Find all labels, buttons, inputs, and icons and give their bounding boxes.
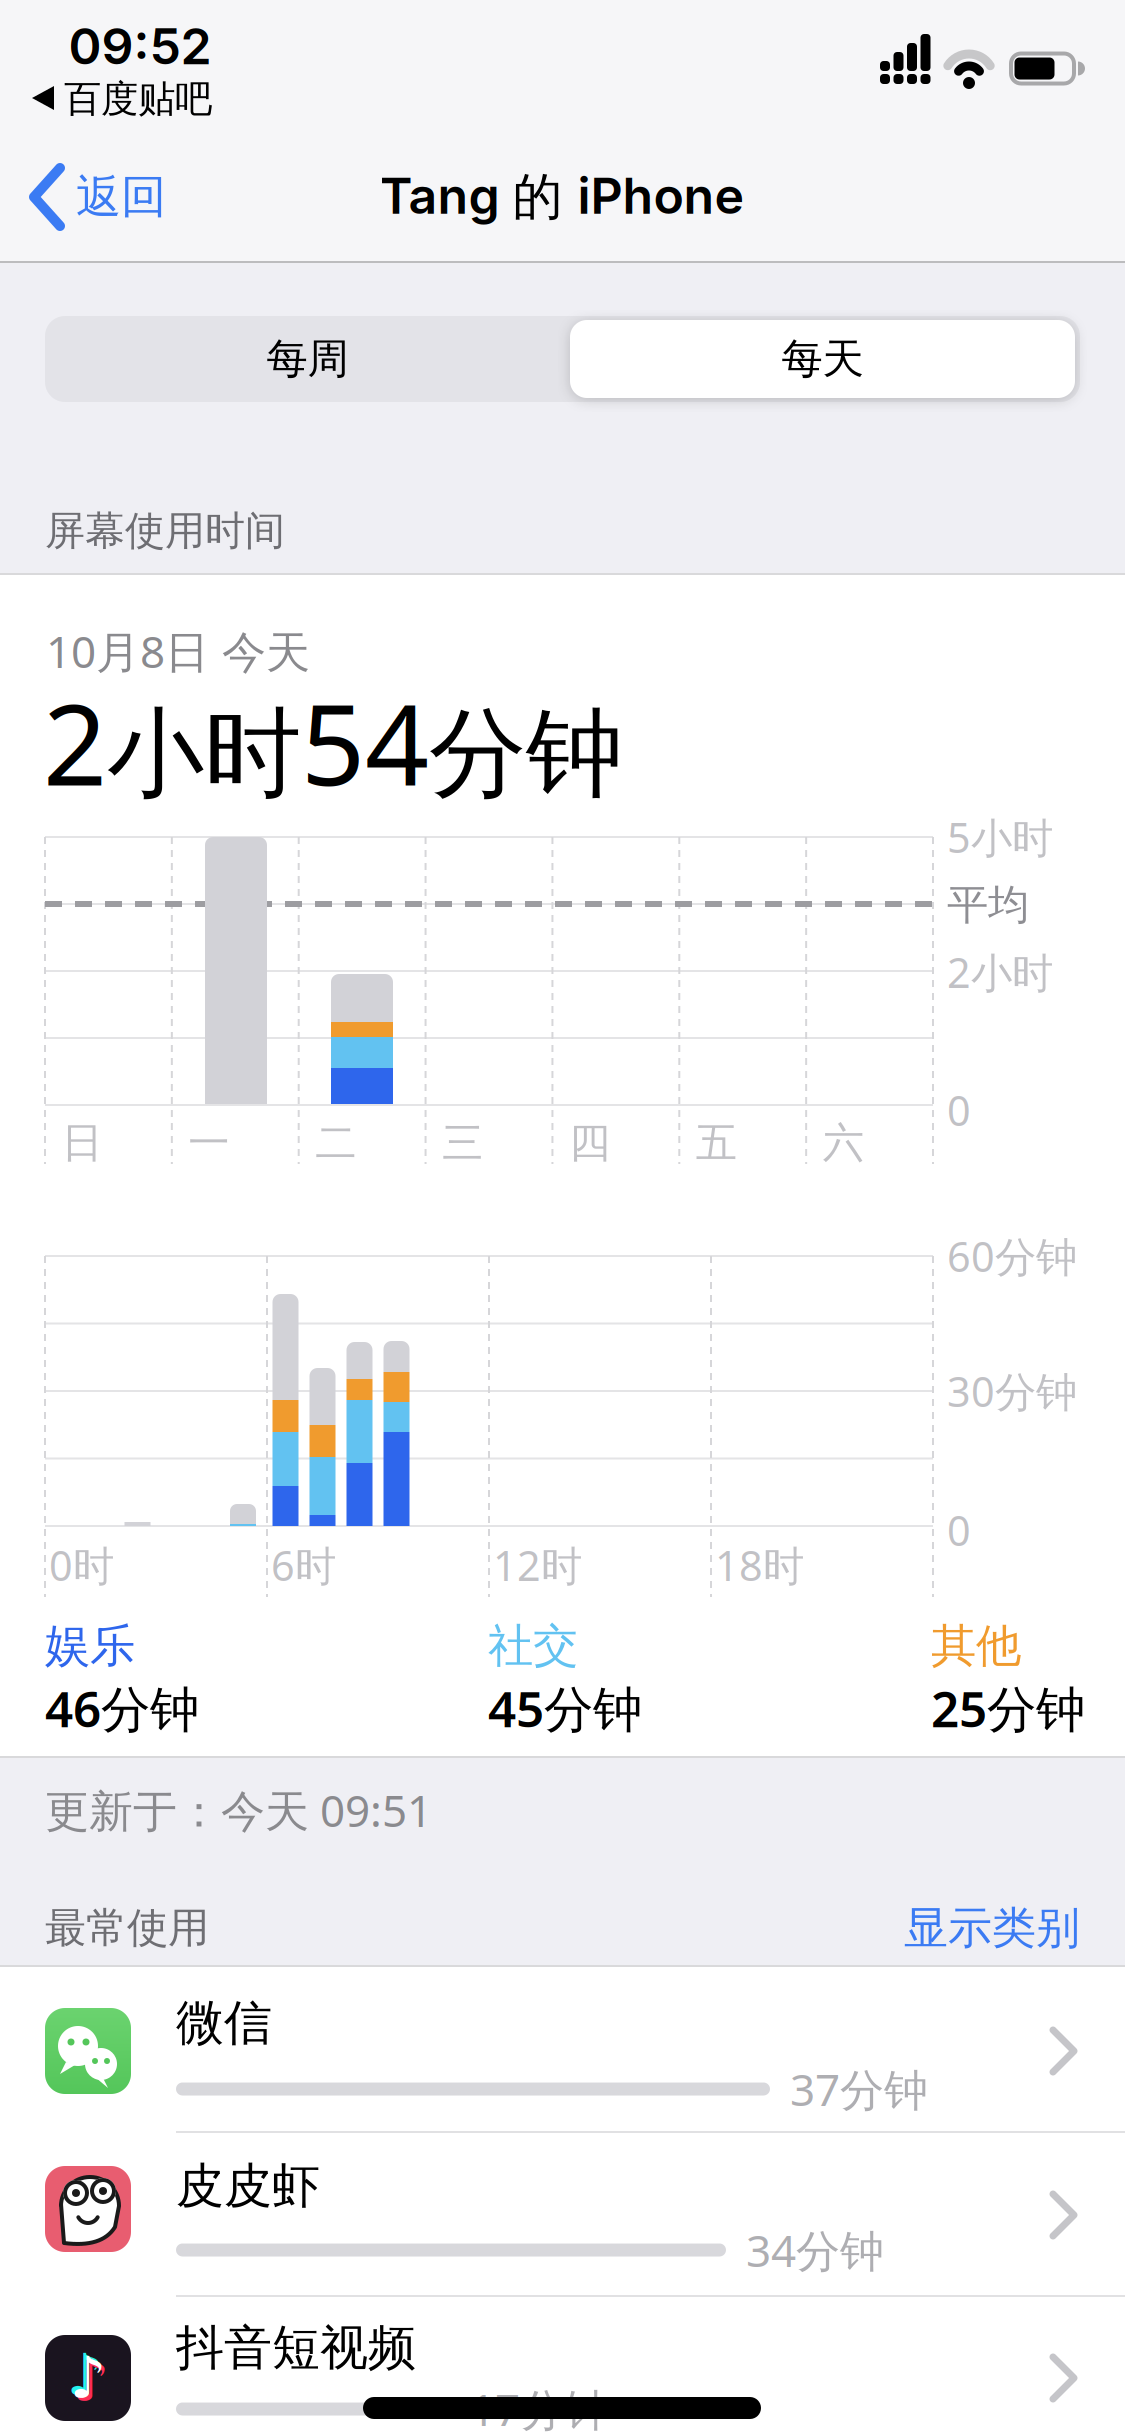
staticText: ♪ (72, 2348, 109, 2414)
staticText: 30分钟 (947, 1364, 1077, 1418)
staticText: 0 (947, 1083, 971, 1137)
staticText: 抖音短视频 (176, 2318, 416, 2377)
button[interactable]: ♪ (0, 2296, 1125, 2436)
staticText: 17分钟 (470, 2380, 608, 2436)
staticText: 45分钟 (488, 1675, 642, 1741)
staticText: 六 (823, 1118, 864, 1168)
staticText: 46分钟 (45, 1675, 199, 1741)
staticText: 0 (947, 1503, 971, 1557)
staticText: 五 (696, 1118, 737, 1168)
staticText: 平均 (947, 880, 1029, 930)
button[interactable]: 每周 (55, 320, 560, 398)
staticText: 最常使用 (45, 1903, 209, 1953)
staticText: 三 (442, 1118, 483, 1168)
button[interactable]: 皮皮虾 (0, 2132, 1125, 2296)
button[interactable]: 返回 (26, 164, 236, 230)
staticText: 屏幕使用时间 (45, 506, 285, 555)
staticText: 2小时 (947, 945, 1053, 999)
staticText: 2小时54分钟 (43, 668, 623, 816)
button[interactable]: 微信 (0, 1968, 1125, 2132)
staticText: 二 (315, 1118, 356, 1168)
staticText: 60分钟 (947, 1229, 1077, 1283)
staticText: Tang 的 iPhone (379, 165, 744, 229)
staticText: 每周 (266, 334, 348, 384)
staticText: 10月8日 今天 (46, 622, 310, 680)
staticText: 娱乐 (45, 1618, 135, 1674)
staticText: 日 (61, 1118, 102, 1168)
staticText: 返回 (76, 169, 166, 225)
staticText: 37分钟 (790, 2060, 928, 2118)
staticText: 12时 (493, 1538, 582, 1592)
staticText: 皮皮虾 (176, 2156, 320, 2215)
staticText: 25分钟 (931, 1675, 1085, 1741)
staticText: ♪ (66, 2342, 103, 2408)
staticText: 社交 (488, 1618, 578, 1674)
staticText: 微信 (176, 1993, 272, 2052)
button[interactable]: 每天 (570, 320, 1075, 398)
button[interactable]: 返回 百度贴吧 (30, 77, 274, 121)
staticText: 其他 (931, 1618, 1021, 1674)
staticText: 6时 (271, 1538, 336, 1592)
staticText: 更新于：今天 09:51 (45, 1781, 432, 1839)
staticText: 显示类别 (904, 1901, 1080, 1955)
staticText: 四 (569, 1118, 610, 1168)
staticText: ♪ (69, 2345, 106, 2411)
button[interactable]: 显示类别 (840, 1901, 1080, 1955)
staticText: 0时 (49, 1538, 114, 1592)
staticText: 09:52 (68, 16, 211, 76)
staticText: 18时 (715, 1538, 804, 1592)
staticText: 34分钟 (746, 2221, 884, 2279)
staticText: 每天 (781, 334, 863, 384)
staticText: 百度贴吧 (64, 76, 212, 122)
staticText: 一 (188, 1118, 229, 1168)
staticText: 5小时 (947, 810, 1053, 864)
